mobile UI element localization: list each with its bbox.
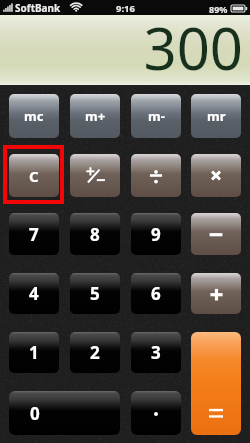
button[interactable]: 9 — [131, 213, 181, 255]
button[interactable]: m- — [131, 94, 181, 138]
button[interactable]: Plus minus — [70, 154, 120, 197]
button[interactable]: Multiply — [191, 154, 241, 197]
staticText: 1 — [29, 341, 39, 364]
staticText: mr — [207, 107, 226, 125]
staticText: SoftBank — [15, 1, 61, 15]
button[interactable]: 4 — [9, 273, 59, 314]
button[interactable]: 0 — [9, 391, 120, 435]
button[interactable]: 5 — [70, 273, 120, 314]
button[interactable]: Add — [191, 273, 241, 314]
staticText: 4 — [29, 282, 39, 305]
button[interactable]: mr — [191, 94, 241, 138]
button[interactable]: C — [9, 154, 59, 197]
button[interactable]: m+ — [70, 94, 120, 138]
button[interactable]: Subtract — [191, 213, 241, 255]
staticText: 7 — [29, 223, 39, 246]
staticText: 0 — [30, 402, 40, 425]
staticText: 3 — [151, 341, 161, 364]
button[interactable]: 6 — [131, 273, 181, 314]
button[interactable]: 8 — [70, 213, 120, 255]
button[interactable]: 2 — [70, 332, 120, 373]
staticText: 300 — [143, 8, 243, 78]
button[interactable]: Decimal point — [131, 391, 181, 435]
button[interactable]: mc — [9, 94, 59, 138]
button[interactable]: Equals — [191, 332, 241, 435]
staticText: mc — [24, 107, 44, 125]
button[interactable]: Divide — [131, 154, 181, 197]
staticText: 2 — [90, 341, 100, 364]
staticText: 5 — [90, 282, 100, 305]
staticText: 6 — [151, 282, 161, 305]
staticText: m+ — [85, 107, 106, 125]
staticText: 8 — [90, 223, 100, 246]
button[interactable]: 3 — [131, 332, 181, 373]
staticText: C — [29, 166, 39, 186]
staticText: 9 — [151, 223, 161, 246]
staticText: 89% — [209, 3, 228, 15]
button[interactable]: 7 — [9, 213, 59, 255]
staticText: m- — [148, 107, 165, 125]
button[interactable]: 1 — [9, 332, 59, 373]
staticText: 9:16 — [116, 2, 135, 15]
